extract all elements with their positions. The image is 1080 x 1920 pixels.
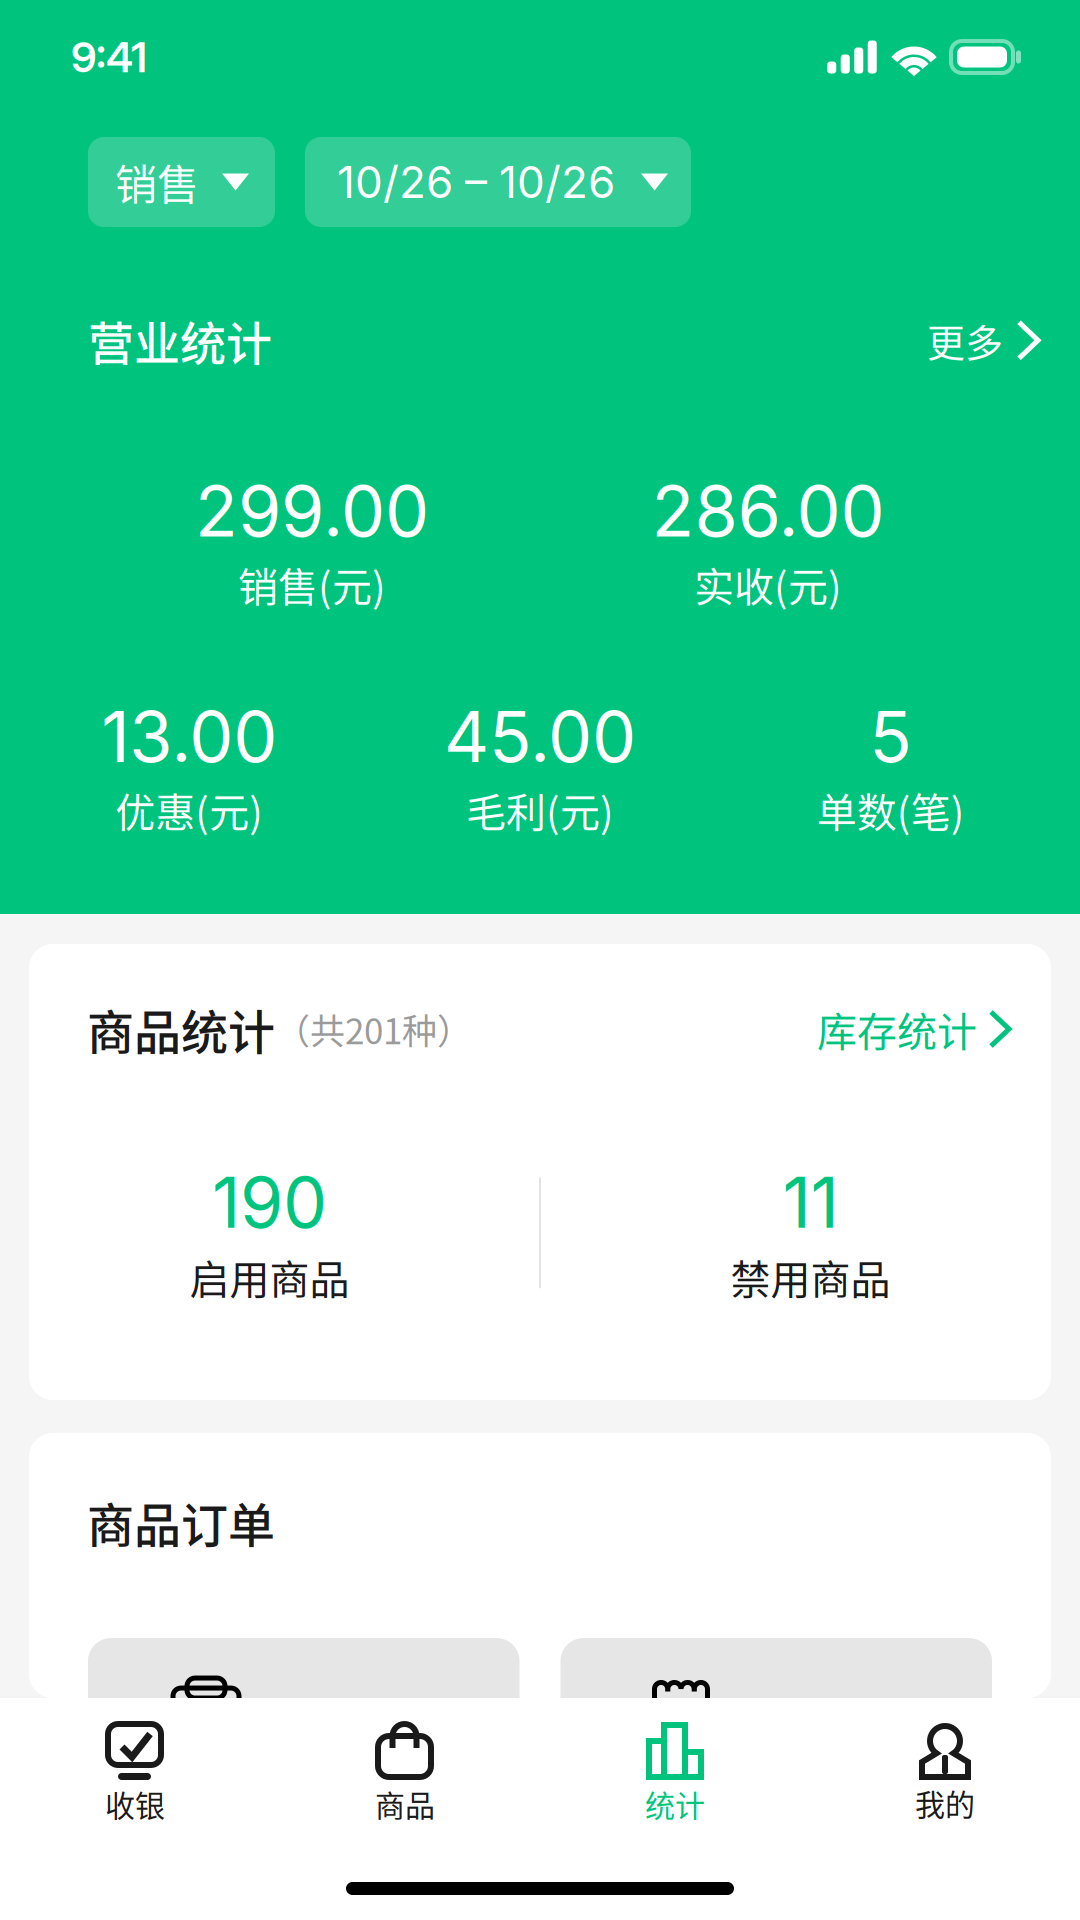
staticText: 190	[212, 1160, 327, 1245]
staticText: 禁用商品	[730, 1248, 890, 1306]
staticText: 营业统计	[88, 307, 272, 374]
button[interactable]: 统计	[540, 1721, 810, 1825]
staticText: 销售	[115, 152, 199, 212]
button[interactable]: 我的	[810, 1722, 1080, 1824]
staticText: 11	[782, 1160, 838, 1245]
staticText: 299.00	[195, 469, 429, 553]
staticText: 商品统计	[87, 995, 275, 1063]
staticText: 启用商品	[189, 1248, 349, 1306]
staticText: 库存统计	[817, 1000, 977, 1058]
button[interactable]: 销售	[88, 137, 275, 227]
button[interactable]: 库存统计	[817, 1000, 1009, 1058]
staticText: 286.00	[651, 469, 884, 553]
staticText: 收银	[105, 1782, 165, 1825]
staticText: 销售(元)	[238, 555, 386, 613]
button[interactable]: 收银	[0, 1721, 270, 1825]
staticText: 5	[869, 694, 912, 779]
button[interactable]: 商品	[270, 1721, 540, 1825]
button[interactable]: 打印小票	[88, 1638, 519, 1838]
staticText: 统计	[645, 1782, 705, 1825]
button[interactable]: 优惠券	[560, 1638, 992, 1838]
staticText: 毛利(元)	[466, 781, 614, 839]
staticText: （共201种）	[275, 1004, 472, 1054]
staticText: 我的	[915, 1781, 975, 1824]
staticText: 实收(元)	[694, 555, 842, 613]
staticText: 9:41	[71, 32, 147, 82]
staticText: 优惠(元)	[115, 781, 263, 839]
button[interactable]: 更多	[927, 313, 1038, 368]
staticText: 10/26 – 10/26	[337, 155, 615, 209]
staticText: 45.00	[444, 694, 636, 779]
staticText: 13.00	[101, 694, 277, 779]
staticText: 商品	[375, 1782, 435, 1825]
staticText: 单数(笔)	[817, 781, 965, 839]
button[interactable]: 10/26 – 10/26	[305, 137, 691, 227]
staticText: 商品订单	[87, 1488, 275, 1556]
staticText: 更多	[927, 313, 1003, 368]
